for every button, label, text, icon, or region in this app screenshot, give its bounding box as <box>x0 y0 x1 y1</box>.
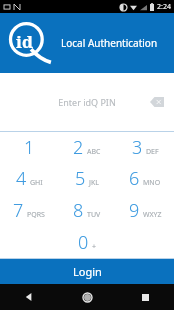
button[interactable]: Recent apps <box>116 284 174 310</box>
staticText: + <box>92 242 97 252</box>
button[interactable]: 0 <box>58 226 116 258</box>
button[interactable]: 1 <box>0 132 58 163</box>
staticText: WXYZ <box>143 210 162 220</box>
button[interactable]: 6 <box>116 163 174 194</box>
button[interactable]: 5 <box>58 163 116 194</box>
button[interactable]: Login <box>0 259 174 284</box>
staticText: 6 <box>129 166 140 191</box>
staticText: 5 <box>75 166 86 191</box>
staticText: 9 <box>129 198 140 223</box>
button[interactable]: 2 <box>58 132 116 163</box>
staticText: 7 <box>13 198 24 223</box>
button[interactable]: Back <box>0 284 58 310</box>
staticText: Enter idQ PIN <box>58 96 116 108</box>
button[interactable]: 7 <box>0 194 58 226</box>
staticText: 0 <box>78 230 89 255</box>
staticText: 2 <box>73 135 84 160</box>
staticText: 8 <box>73 198 84 223</box>
button[interactable]: 4 <box>0 163 58 194</box>
button[interactable]: 3 <box>116 132 174 163</box>
staticText: id <box>16 30 34 53</box>
staticText: 2:24 <box>157 2 171 12</box>
staticText: 1 <box>24 135 35 160</box>
staticText: ABC <box>87 147 101 157</box>
staticText: 3 <box>132 135 143 160</box>
staticText: Login <box>73 264 102 279</box>
staticText: Local Authentication <box>61 36 158 50</box>
staticText: GHI <box>30 178 43 188</box>
staticText: JKL <box>89 178 99 188</box>
staticText: PQRS <box>27 210 45 220</box>
staticText: DEF <box>146 147 159 157</box>
button[interactable]: Home <box>58 284 116 310</box>
button[interactable]: 8 <box>58 194 116 226</box>
staticText: 4 <box>16 166 27 191</box>
other: idQ logo <box>7 21 51 65</box>
button[interactable]: Backspace <box>148 95 166 109</box>
staticText: TUV <box>87 210 101 220</box>
staticText: MNO <box>143 178 161 188</box>
button[interactable]: 9 <box>116 194 174 226</box>
